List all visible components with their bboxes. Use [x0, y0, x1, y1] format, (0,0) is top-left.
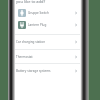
button[interactable]: Battery storage systems	[15, 63, 80, 78]
button[interactable]: Lantern Plug	[15, 21, 80, 29]
staticText: Lantern Plug	[28, 23, 47, 27]
staticText: Thermostat	[16, 55, 33, 59]
staticText: you like to add?	[16, 0, 46, 4]
button[interactable]: Car charging station	[15, 34, 80, 49]
staticText: Battery storage systems	[16, 69, 51, 73]
staticText: Gruppe Switch	[28, 11, 49, 15]
staticText: Car charging station	[16, 40, 46, 44]
button[interactable]: Gruppe Switch	[15, 9, 80, 17]
button[interactable]: Thermostat	[15, 49, 80, 64]
